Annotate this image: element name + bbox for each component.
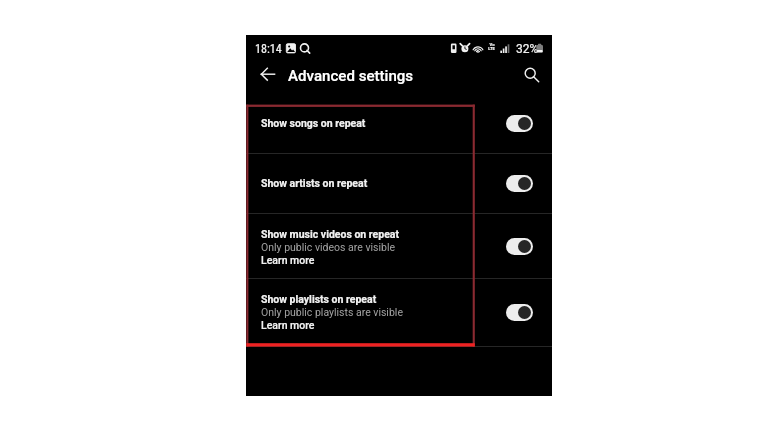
staticText: 32% [516, 42, 539, 56]
staticText: Learn more [261, 318, 315, 331]
button[interactable]: Show playlists on repeat, on [487, 279, 552, 346]
staticText: Show songs on repeat [261, 117, 366, 130]
staticText: Vo [489, 43, 495, 47]
button[interactable]: Show music videos on repeat, on [487, 214, 552, 278]
staticText: 18:14 [255, 42, 282, 56]
staticText: Advanced settings [288, 68, 414, 85]
button[interactable]: Show music videos on repeat [246, 214, 552, 278]
staticText: Only public videos are visible [261, 240, 396, 253]
staticText: Only public playlists are visible [261, 305, 403, 318]
button[interactable]: Show artists on repeat, on [487, 154, 552, 213]
staticText: LTE [488, 47, 495, 51]
staticText: Show music videos on repeat [261, 227, 400, 240]
button[interactable]: Search [516, 59, 544, 87]
staticText: Show playlists on repeat [261, 292, 377, 305]
staticText: Learn more [261, 253, 315, 266]
button[interactable]: Show songs on repeat, on [487, 93, 552, 153]
button[interactable]: Show songs on repeat [246, 93, 552, 153]
button[interactable]: Back [254, 60, 282, 88]
button[interactable]: Show playlists on repeat [246, 279, 552, 346]
staticText: Show artists on repeat [261, 177, 368, 190]
button[interactable]: Show artists on repeat [246, 154, 552, 213]
